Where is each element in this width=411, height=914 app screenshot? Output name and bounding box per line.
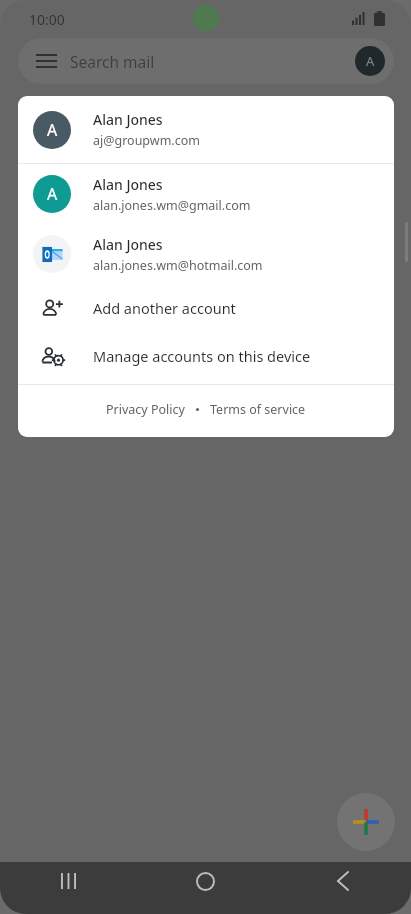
button[interactable]: Manage accounts on this device [18, 332, 394, 380]
staticText: Terms of service [210, 401, 306, 418]
staticText: alan.jones.wm@hotmail.com [93, 257, 263, 274]
button[interactable]: Recent apps [0, 862, 137, 900]
button[interactable]: A [18, 164, 394, 224]
staticText: A [47, 183, 58, 205]
button[interactable]: Account [355, 46, 385, 76]
button[interactable]: Compose [337, 793, 395, 851]
button[interactable]: A [18, 96, 394, 163]
staticText: 10:00 [29, 10, 65, 29]
staticText: Alan Jones [93, 110, 163, 129]
staticText: alan.jones.wm@gmail.com [93, 197, 251, 214]
button[interactable]: Open navigation drawer [28, 43, 64, 79]
staticText: aj@groupwm.com [93, 132, 200, 149]
button[interactable]: Back [274, 862, 411, 900]
staticText: Search mail [70, 51, 155, 72]
staticText: Alan Jones [93, 175, 163, 194]
staticText: Add another account [93, 298, 236, 318]
button[interactable]: Open navigation drawer [18, 38, 394, 84]
staticText: Manage accounts on this device [93, 346, 311, 366]
staticText: A [47, 119, 58, 141]
button[interactable]: Home [137, 862, 274, 900]
staticText: Alan Jones [93, 235, 163, 254]
button[interactable]: Alan Jones [18, 224, 394, 284]
button[interactable]: Terms of service [208, 399, 308, 420]
staticText: Privacy Policy [106, 401, 185, 418]
button[interactable]: Privacy Policy [104, 399, 187, 420]
staticText: A [366, 52, 375, 70]
button[interactable]: Add another account [18, 284, 394, 332]
